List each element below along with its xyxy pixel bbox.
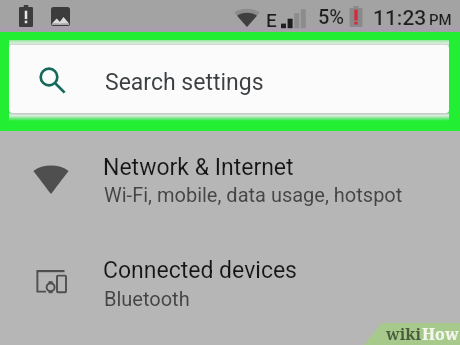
other: Search bbox=[40, 68, 68, 96]
staticText: wiki bbox=[386, 323, 422, 345]
staticText: Bluetooth bbox=[104, 287, 190, 310]
staticText: Search settings bbox=[105, 69, 264, 96]
staticText: 11:23 bbox=[373, 6, 427, 31]
staticText: E bbox=[266, 9, 277, 31]
button[interactable]: Connected devices bbox=[0, 247, 460, 341]
button[interactable]: Network & Internet bbox=[0, 143, 460, 237]
staticText: Network & Internet bbox=[103, 154, 294, 181]
staticText: Connected devices bbox=[103, 257, 297, 284]
staticText: PM bbox=[429, 11, 452, 29]
staticText: 5% bbox=[318, 5, 345, 28]
staticText: How bbox=[422, 323, 459, 345]
button[interactable]: Search bbox=[9, 45, 449, 113]
staticText: Wi-Fi, mobile, data usage, hotspot bbox=[104, 183, 403, 206]
